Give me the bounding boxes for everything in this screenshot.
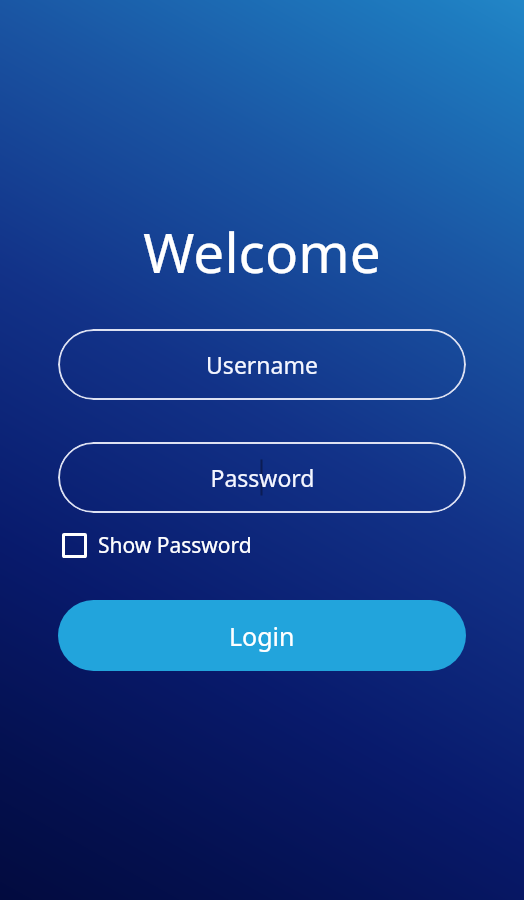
- button[interactable]: Show Password: [62, 531, 462, 560]
- button[interactable]: Username: [58, 329, 466, 400]
- staticText: Password: [210, 462, 315, 493]
- button[interactable]: Password: [58, 442, 466, 513]
- staticText: Username: [206, 349, 318, 380]
- staticText: Login: [229, 619, 295, 653]
- staticText: Welcome: [0, 214, 524, 289]
- staticText: Show Password: [98, 531, 252, 560]
- button[interactable]: Login: [58, 600, 466, 671]
